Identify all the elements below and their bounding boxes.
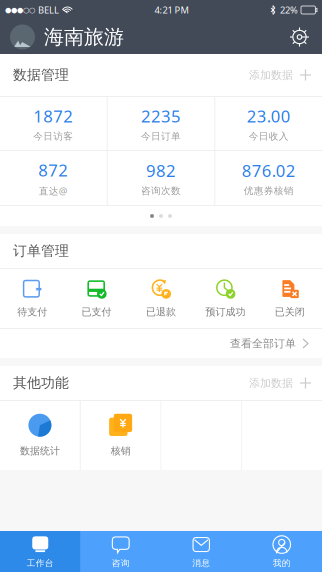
staticText: 今日收入 — [249, 130, 289, 142]
button[interactable]: 预订成功 — [193, 269, 258, 328]
button[interactable]: 23.00 — [215, 97, 322, 150]
staticText: 数据统计 — [20, 445, 60, 457]
staticText: 876.02 — [242, 159, 296, 182]
button[interactable]: 添加数据 — [229, 60, 311, 90]
staticText: 1872 — [33, 105, 73, 127]
button[interactable]: 数据统计 — [0, 401, 80, 470]
staticText: 添加数据 — [249, 376, 293, 390]
button[interactable]: 我的 — [241, 531, 322, 572]
staticText: 已退款 — [146, 306, 176, 318]
staticText: 已支付 — [82, 306, 112, 318]
button[interactable]: 876.02 — [215, 151, 322, 205]
button[interactable]: 添加数据 — [229, 368, 311, 398]
staticText: 已关闭 — [275, 306, 305, 318]
staticText: 872 — [38, 159, 68, 181]
staticText: ●●● — [5, 6, 23, 14]
button[interactable]: 已支付 — [64, 269, 129, 328]
staticText: 待支付 — [17, 306, 47, 318]
staticText: ○○ — [23, 6, 35, 14]
staticText: 982 — [146, 159, 176, 182]
button[interactable]: 已关闭 — [258, 269, 322, 328]
staticText: 消息 — [192, 557, 210, 568]
button[interactable]: 1872 — [0, 97, 107, 150]
staticText: 今日订单 — [141, 130, 181, 142]
staticText: 其他功能 — [13, 374, 69, 392]
staticText: 23.00 — [247, 105, 291, 127]
button[interactable]: 查看全部订单 — [0, 329, 322, 358]
button[interactable]: 咨询 — [80, 531, 161, 572]
button[interactable]: 982 — [108, 151, 214, 205]
staticText: 我的 — [273, 557, 291, 568]
staticText: 咨询 — [112, 557, 130, 568]
button[interactable]: 已退款 — [129, 269, 193, 328]
staticText: 预订成功 — [205, 306, 245, 318]
staticText: 查看全部订单 — [230, 337, 296, 350]
button[interactable]: 872 — [0, 151, 107, 205]
button[interactable]: 核销 — [81, 401, 161, 470]
staticText: 2235 — [141, 105, 181, 127]
staticText: 咨询次数 — [141, 185, 181, 197]
staticText: 今日访客 — [33, 130, 73, 142]
button[interactable]: 设置 — [283, 20, 316, 53]
staticText: 4:21 PM — [154, 4, 188, 16]
button[interactable]: 2235 — [108, 97, 214, 150]
button[interactable]: 待支付 — [0, 269, 64, 328]
staticText: 22% — [280, 4, 298, 16]
staticText: 订单管理 — [13, 242, 69, 260]
staticText: BELL — [36, 4, 59, 16]
button[interactable]: 消息 — [161, 531, 241, 572]
staticText: 数据管理 — [13, 66, 69, 84]
button[interactable]: 工作台 — [0, 531, 80, 572]
staticText: 添加数据 — [249, 68, 293, 82]
staticText: 优惠券核销 — [244, 185, 294, 197]
staticText: 直达@ — [39, 184, 68, 197]
staticText: 核销 — [111, 445, 131, 457]
staticText: 海南旅游 — [44, 24, 124, 50]
staticText: 工作台 — [27, 557, 54, 568]
